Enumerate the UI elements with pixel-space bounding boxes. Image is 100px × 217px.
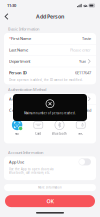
- button[interactable]: App Use: [4, 156, 96, 167]
- staticText: Taste: [82, 36, 91, 41]
- staticText: *: [9, 36, 11, 41]
- button[interactable]: Last Name: [4, 44, 96, 55]
- button[interactable]: Finger: [91, 119, 100, 135]
- staticText: Person ID: [9, 70, 27, 75]
- staticText: 6E117647: [75, 70, 91, 75]
- button[interactable]: NFC: [70, 119, 91, 135]
- button[interactable]: Access Control: [4, 93, 96, 104]
- staticText: App Use: [9, 159, 24, 164]
- staticText: Face: [15, 132, 20, 135]
- button[interactable]: Card: [28, 119, 49, 135]
- button[interactable]: Face: [6, 119, 28, 135]
- button[interactable]: Credential: [4, 105, 96, 116]
- button[interactable]: Department: [4, 56, 96, 67]
- button[interactable]: Person ID: [4, 67, 96, 78]
- button[interactable]: *: [4, 33, 96, 44]
- staticText: Yuxi: [79, 59, 86, 64]
- staticText: Credential: [9, 108, 27, 113]
- staticText: First Name: [11, 36, 31, 41]
- staticText: Authentication Method: [8, 87, 46, 92]
- staticText: Access Control: [9, 96, 36, 101]
- staticText: OK: [46, 198, 53, 205]
- staticText: Bluetooth: [52, 132, 67, 135]
- staticText: Department: [9, 59, 30, 64]
- staticText: Once a person is added, the ID cannot be…: [9, 78, 83, 82]
- button[interactable]: OK: [5, 195, 95, 207]
- staticText: Please enter: [70, 47, 91, 52]
- button[interactable]: App Use: [79, 158, 91, 165]
- staticText: Basic Information: [8, 26, 39, 32]
- staticText: Account Information: [8, 150, 43, 155]
- staticText: More Information: [38, 186, 62, 189]
- button[interactable]: Back: [0, 11, 13, 22]
- staticText: Card: [35, 132, 41, 135]
- button[interactable]: Bluetooth: [49, 119, 70, 135]
- staticText: NFC: [78, 132, 83, 135]
- staticText: 11:30: [7, 3, 16, 8]
- staticText: 5 added: [78, 108, 91, 113]
- staticText: Add Person: [36, 13, 64, 20]
- staticText: Use the App to open doors via Bluetooth,…: [9, 167, 53, 174]
- staticText: Maximum number of persons reached.: [24, 111, 76, 115]
- staticText: Last Name: [9, 47, 28, 52]
- button[interactable]: More Information: [4, 184, 96, 191]
